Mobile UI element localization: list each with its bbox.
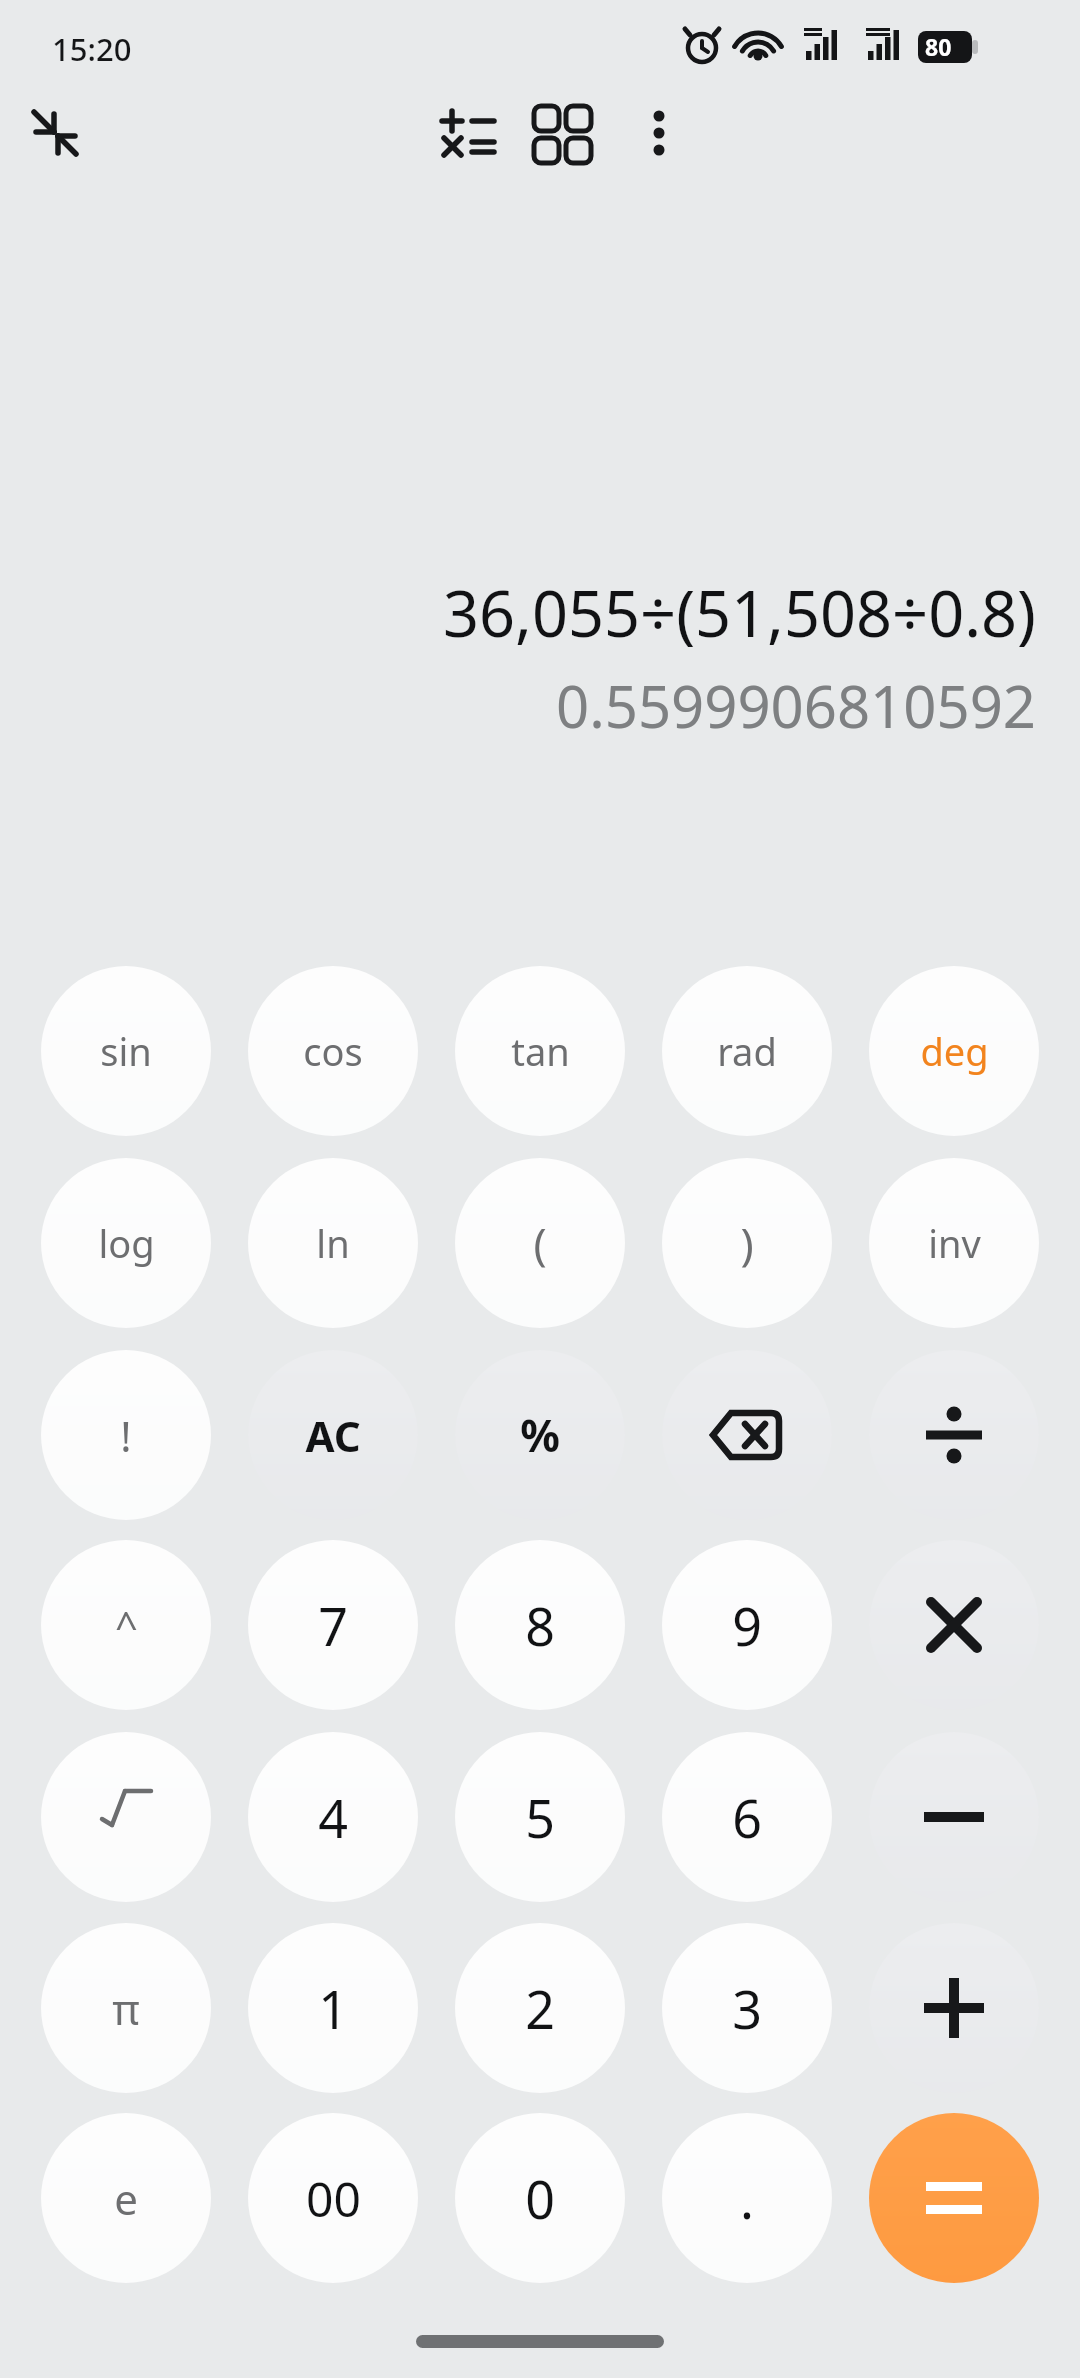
- button[interactable]: 8: [455, 1540, 625, 1710]
- button[interactable]: (: [455, 1158, 625, 1328]
- staticText: log: [98, 1217, 155, 1269]
- button[interactable]: AC: [248, 1350, 418, 1520]
- button[interactable]: ): [662, 1158, 832, 1328]
- button[interactable]: ln: [248, 1158, 418, 1328]
- staticText: 0: [525, 2163, 555, 2234]
- button[interactable]: 6: [662, 1732, 832, 1902]
- staticText: 7: [318, 1590, 348, 1661]
- button[interactable]: 3: [662, 1923, 832, 2093]
- staticText: sin: [100, 1025, 152, 1077]
- staticText: 15:20: [52, 28, 132, 70]
- button[interactable]: deg: [869, 966, 1039, 1136]
- staticText: !: [120, 1407, 132, 1464]
- staticText: cos: [303, 1025, 363, 1077]
- button[interactable]: Collapse: [18, 96, 92, 170]
- button[interactable]: 9: [662, 1540, 832, 1710]
- button[interactable]: 00: [248, 2113, 418, 2283]
- button[interactable]: inv: [869, 1158, 1039, 1328]
- button[interactable]: tan: [455, 966, 625, 1136]
- staticText: (: [533, 1213, 547, 1273]
- staticText: ): [740, 1213, 754, 1273]
- staticText: tan: [511, 1025, 570, 1077]
- button[interactable]: .: [662, 2113, 832, 2283]
- staticText: rad: [717, 1025, 777, 1077]
- staticText: 80: [925, 31, 952, 62]
- staticText: 36,055÷(51,508÷0.8): [443, 570, 1036, 656]
- staticText: AC: [305, 1407, 361, 1464]
- staticText: .: [740, 2163, 754, 2234]
- staticText: 00: [306, 2166, 361, 2231]
- button[interactable]: 7: [248, 1540, 418, 1710]
- button[interactable]: π: [41, 1923, 211, 2093]
- staticText: deg: [920, 1025, 989, 1077]
- button[interactable]: cos: [248, 966, 418, 1136]
- button[interactable]: Divide: [869, 1350, 1039, 1520]
- button[interactable]: Subtract: [869, 1732, 1039, 1902]
- button[interactable]: e: [41, 2113, 211, 2283]
- staticText: 9: [732, 1590, 762, 1661]
- button[interactable]: ^: [41, 1540, 211, 1710]
- button[interactable]: Square root: [41, 1732, 211, 1902]
- staticText: %: [520, 1405, 560, 1465]
- button[interactable]: Keypad layout: [524, 96, 598, 170]
- button[interactable]: 4: [248, 1732, 418, 1902]
- staticText: π: [112, 1980, 140, 2037]
- staticText: 3: [732, 1973, 762, 2044]
- staticText: ^: [115, 1598, 138, 1652]
- staticText: 2: [525, 1973, 555, 2044]
- staticText: inv: [928, 1217, 981, 1269]
- button[interactable]: 0: [455, 2113, 625, 2283]
- staticText: 8: [525, 1590, 555, 1661]
- button[interactable]: %: [455, 1350, 625, 1520]
- button[interactable]: rad: [662, 966, 832, 1136]
- staticText: 1: [318, 1973, 348, 2044]
- button[interactable]: Add: [869, 1923, 1039, 2093]
- button[interactable]: 2: [455, 1923, 625, 2093]
- button[interactable]: Equals: [869, 2113, 1039, 2283]
- button[interactable]: 1: [248, 1923, 418, 2093]
- button[interactable]: sin: [41, 966, 211, 1136]
- staticText: e: [114, 2170, 138, 2227]
- staticText: 5: [525, 1782, 555, 1853]
- staticText: 0.5599906810592: [555, 666, 1036, 745]
- staticText: 4: [318, 1782, 348, 1853]
- button[interactable]: Calculator mode: [428, 94, 506, 172]
- staticText: ln: [316, 1217, 350, 1269]
- button[interactable]: More options: [622, 96, 696, 170]
- button[interactable]: !: [41, 1350, 211, 1520]
- button[interactable]: log: [41, 1158, 211, 1328]
- button[interactable]: Multiply: [869, 1540, 1039, 1710]
- button[interactable]: Backspace: [662, 1350, 832, 1520]
- staticText: 6: [732, 1782, 762, 1853]
- button[interactable]: 5: [455, 1732, 625, 1902]
